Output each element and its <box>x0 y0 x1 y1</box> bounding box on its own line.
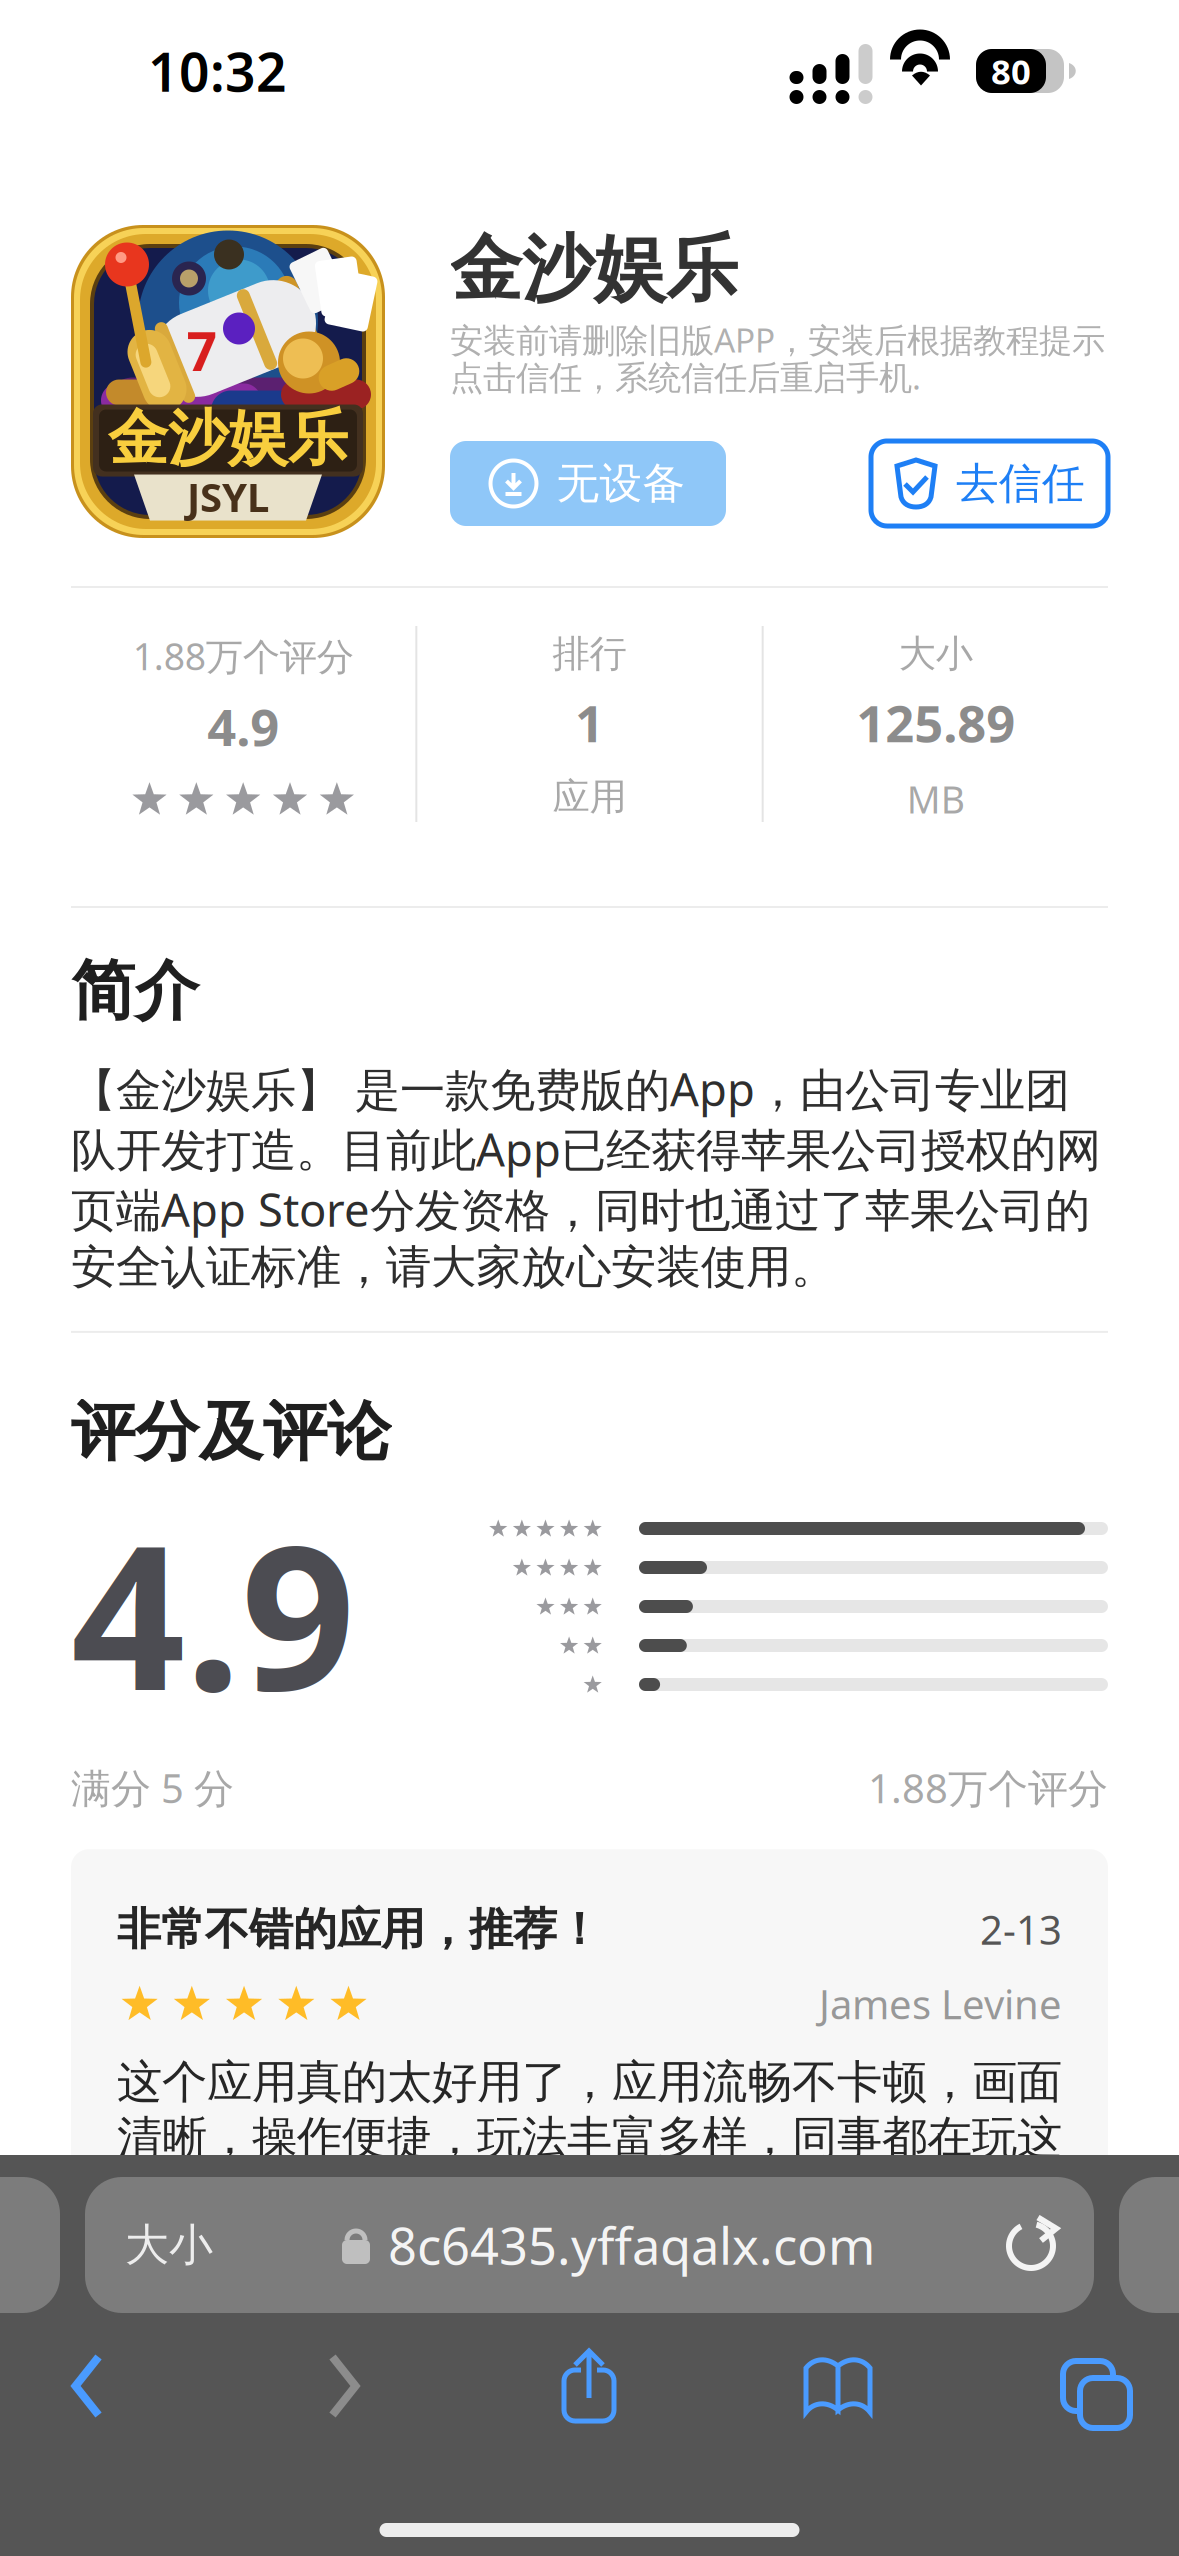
button[interactable]: 无设备 <box>450 441 726 526</box>
staticText: JSYL <box>187 470 269 523</box>
staticText: James Levine <box>819 1977 1062 2030</box>
staticText: MB <box>907 774 965 824</box>
staticText: 1.88万个评分 <box>133 631 354 681</box>
staticText: 安装前请删除旧版APP，安装后根据教程提示 <box>450 317 1105 362</box>
staticText: 2-13 <box>980 1903 1062 1956</box>
staticText: 评分及评论 <box>71 1393 391 1471</box>
button[interactable]: 大小 <box>85 2177 1094 2313</box>
staticText: 大小 <box>899 631 973 677</box>
button[interactable]: Forward <box>269 2325 419 2447</box>
staticText: 金沙娱乐 <box>108 402 348 475</box>
staticText: 简介 <box>71 952 199 1031</box>
staticText: 无设备 <box>556 457 685 510</box>
staticText: 非常不错的应用，推荐！ <box>117 1902 601 1956</box>
staticText: 4.9 <box>71 1479 355 1745</box>
staticText: 1 <box>575 689 604 756</box>
staticText: 这个应用真的太好用了，应用流畅不卡顿，画面清晰，操作便捷，玩法丰富多样，同事都在… <box>117 2054 1062 2166</box>
button[interactable]: Share <box>514 2325 664 2447</box>
staticText: 满分 5 分 <box>71 1761 234 1814</box>
staticText: 8c6435.yffaqalx.com <box>388 2211 875 2279</box>
staticText: 1.88万个评分 <box>868 1761 1108 1814</box>
staticText: 4.9 <box>207 693 279 760</box>
button[interactable]: Back <box>12 2325 162 2447</box>
button[interactable]: Tabs <box>1013 2325 1163 2447</box>
staticText: 7 <box>186 315 217 386</box>
staticText: 80 <box>991 48 1031 94</box>
staticText: 排行 <box>552 631 626 677</box>
staticText: 10:32 <box>148 36 287 106</box>
button[interactable]: Bookmarks <box>763 2325 913 2447</box>
staticText: 应用 <box>552 774 626 820</box>
button[interactable]: 去信任 <box>871 441 1108 526</box>
staticText: 点击信任，系统信任后重启手机. <box>450 355 921 399</box>
staticText: 大小 <box>125 2218 213 2272</box>
staticText: 去信任 <box>956 457 1085 510</box>
staticText: 金沙娱乐 <box>450 225 738 313</box>
staticText: 【金沙娱乐】 是一款免费版的App，由公司专业团队开发打造。目前此App已经获得… <box>71 1059 1101 1295</box>
staticText: 125.89 <box>856 689 1015 756</box>
